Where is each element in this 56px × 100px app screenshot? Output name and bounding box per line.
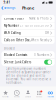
staticText: Favorites (2, 96, 9, 98)
button[interactable]: Voicemail (45, 86, 56, 100)
button[interactable]: My Number (2, 22, 54, 29)
staticText: Silence Junk Callers (4, 60, 31, 64)
button[interactable]: Calls on Other Devices (2, 37, 54, 44)
button[interactable]: Favorites (0, 86, 11, 100)
staticText: Wi-Fi Calling (4, 31, 21, 35)
staticText: Calls from unknown numbers identified as… (5, 67, 50, 84)
button[interactable]: Blocked Contacts (2, 51, 54, 58)
button[interactable]: Contact Poster (2, 15, 54, 22)
staticText: +1 (415) 555-0199 (20, 24, 49, 27)
staticText: Blocked Contacts (4, 53, 27, 57)
staticText: Calls on Other Devices (4, 38, 30, 42)
button[interactable]: Wi-Fi Calling (2, 29, 54, 36)
button[interactable]: Recents (11, 86, 22, 100)
staticText: Phone (22, 5, 34, 11)
staticText: Recents (14, 96, 20, 98)
staticText: Voicemail (47, 96, 53, 98)
staticText: Keypad (36, 96, 42, 98)
staticText: My Number (4, 24, 19, 27)
button[interactable]: Keypad (34, 86, 45, 100)
staticText: Settings (4, 6, 15, 10)
staticText: Contact Poster (4, 17, 24, 20)
staticText: 3 Numbers (34, 53, 49, 57)
staticText: Blocked (4, 47, 15, 50)
staticText: When Nearby (31, 38, 49, 42)
staticText: Off (45, 31, 49, 35)
button[interactable]: Contacts (22, 86, 34, 100)
button[interactable]: Settings (0, 5, 15, 11)
staticText: Name & Photo (29, 17, 49, 20)
staticText: 9:41 (3, 1, 10, 4)
staticText: Contacts (25, 96, 31, 98)
button[interactable]: Silence Junk Callers (2, 59, 54, 66)
